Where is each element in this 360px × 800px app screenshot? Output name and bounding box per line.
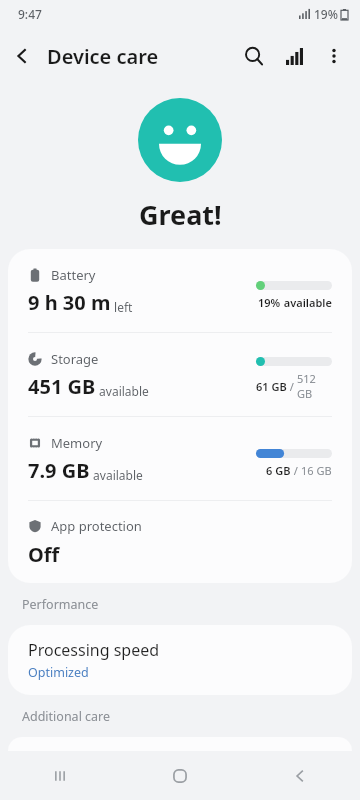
staticText: 61 GB (256, 379, 287, 394)
staticText: available (281, 295, 332, 310)
staticText: 6 GB (266, 463, 291, 478)
staticText: Optimized (28, 664, 89, 681)
staticText: 19% (314, 6, 338, 22)
staticText: App protection (51, 517, 142, 535)
button[interactable]: App protection (8, 501, 352, 583)
button[interactable]: Recents (0, 752, 120, 800)
staticText: Additional care (22, 708, 111, 725)
staticText: Performance (22, 596, 99, 613)
staticText: 19% (258, 295, 281, 310)
staticText: 451 GB (28, 373, 96, 400)
button[interactable]: Usage statistics (274, 36, 314, 76)
staticText: Memory (51, 434, 103, 452)
staticText: Great! (139, 196, 222, 233)
staticText: 512 GB (297, 371, 332, 401)
staticText: Device care (47, 43, 159, 70)
staticText: / (291, 463, 301, 478)
staticText: available (96, 383, 149, 399)
button[interactable]: Search (234, 36, 274, 76)
staticText: 9:47 (18, 6, 42, 22)
staticText: 9 h 30 m (28, 289, 111, 316)
button[interactable]: More options (314, 36, 354, 76)
staticText: Battery (51, 266, 96, 284)
staticText: left (111, 299, 133, 315)
staticText: 16 GB (301, 463, 332, 478)
staticText: / (287, 379, 297, 394)
staticText: available (90, 467, 143, 483)
button[interactable]: Memory (8, 417, 352, 500)
staticText: Processing speed (28, 639, 160, 661)
staticText: 7.9 GB (28, 457, 90, 484)
button[interactable]: Back (0, 34, 44, 78)
staticText: Off (28, 541, 60, 568)
staticText: Storage (51, 350, 99, 368)
button[interactable]: Back (240, 752, 360, 800)
button[interactable]: Battery (8, 249, 352, 332)
button[interactable]: Home (120, 752, 240, 800)
button[interactable]: Storage (8, 333, 352, 416)
button[interactable]: Processing speed (8, 625, 352, 695)
